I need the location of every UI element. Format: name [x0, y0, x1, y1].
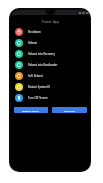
staticText: Soft Reboot	[28, 74, 43, 78]
staticText: Turn Off Screen	[28, 96, 48, 100]
button[interactable]: Shutdown	[11, 26, 90, 37]
button[interactable]: REBOOT MENU	[14, 107, 48, 113]
staticText: Reboot into Bootloader	[28, 63, 58, 67]
staticText: SETTINGS	[64, 109, 76, 112]
button[interactable]: Reboot into Bootloader	[11, 59, 90, 70]
staticText: Restart SystemUI	[28, 85, 50, 89]
button[interactable]: Reboot into Recovery	[11, 48, 90, 59]
staticText: Reboot into Recovery	[28, 52, 55, 56]
button[interactable]: Turn Off Screen	[11, 92, 90, 103]
button[interactable]: Reboot	[11, 37, 90, 48]
staticText: REBOOT MENU	[22, 109, 40, 112]
staticText: Reboot	[28, 41, 38, 45]
button[interactable]: SETTINGS	[52, 107, 87, 113]
staticText: Power App	[42, 19, 60, 24]
staticText: 8:30	[13, 12, 18, 15]
staticText: Shutdown	[28, 30, 41, 34]
button[interactable]: Restart SystemUI	[11, 81, 90, 92]
button[interactable]: Soft Reboot	[11, 70, 90, 81]
